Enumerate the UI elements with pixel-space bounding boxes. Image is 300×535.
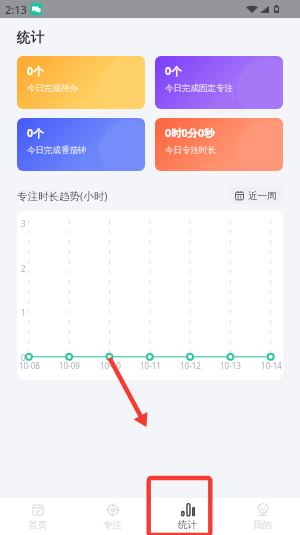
staticText: 10-12	[180, 360, 201, 371]
staticText: 首页	[28, 519, 47, 531]
staticText: 专注	[103, 519, 122, 531]
button[interactable]: 专注	[75, 498, 150, 535]
staticText: 统计	[17, 29, 44, 46]
button[interactable]: 0个	[155, 56, 283, 109]
staticText: 今日完成番茄钟	[27, 145, 87, 156]
staticText: 2:13	[5, 2, 27, 17]
button[interactable]: 0个	[17, 118, 145, 171]
staticText: 3	[21, 218, 26, 229]
button[interactable]: 统计	[150, 498, 225, 535]
staticText: 统计	[178, 519, 197, 531]
staticText: 0时0分0秒	[165, 126, 215, 140]
staticText: 我的	[253, 519, 272, 531]
staticText: 专注时长趋势(小时)	[17, 189, 108, 203]
staticText: 今日完成固定专注	[165, 83, 233, 94]
staticText: 10-13	[220, 360, 241, 371]
staticText: 1	[21, 307, 26, 318]
staticText: 2	[21, 263, 26, 274]
staticText: 0个	[27, 64, 44, 78]
button[interactable]: 我的	[225, 498, 300, 535]
button[interactable]: 0个	[17, 56, 145, 109]
staticText: 0个	[27, 126, 44, 140]
staticText: 0	[21, 352, 26, 363]
staticText: 10-11	[140, 360, 161, 371]
staticText: 10-10	[100, 360, 121, 371]
staticText: 0个	[165, 64, 182, 78]
button[interactable]: 首页	[0, 498, 75, 535]
staticText: 10-14	[261, 360, 282, 371]
staticText: 10-09	[59, 360, 80, 371]
button[interactable]: 近一周	[229, 187, 283, 204]
staticText: 今日完成待办	[27, 83, 78, 94]
staticText: 10-08	[19, 360, 40, 371]
staticText: 今日专注时长	[165, 145, 216, 156]
staticText: 近一周	[248, 190, 277, 202]
button[interactable]: 0时0分0秒	[155, 118, 283, 171]
